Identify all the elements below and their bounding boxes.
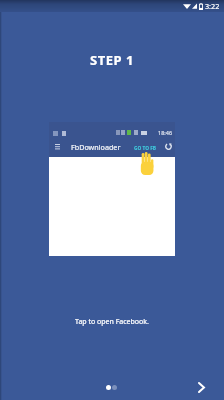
staticText: GO TO FB (134, 145, 157, 152)
staticText: 18:46 (158, 129, 173, 136)
other: Menu (55, 144, 60, 150)
button[interactable]: Step 1 illustration: tap GO TO FB (49, 122, 175, 256)
other: Refresh (165, 143, 172, 150)
button[interactable]: Page 1 (106, 385, 111, 390)
staticText: FbDownloader (71, 142, 121, 152)
button[interactable]: Page 2 (112, 385, 117, 390)
button[interactable]: Next (186, 372, 216, 400)
staticText: 3:22 (205, 1, 220, 11)
staticText: Tap to open Facebook. (0, 317, 224, 327)
staticText: STEP 1 (0, 51, 224, 69)
